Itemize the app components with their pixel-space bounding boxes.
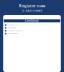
staticText: Register now	[19, 3, 45, 8]
button[interactable]: Continue	[4, 19, 60, 22]
staticText: Free transfers	[7, 33, 18, 34]
staticText: Cashback rewards	[7, 30, 22, 32]
staticText: to claim a reward	[21, 9, 42, 12]
staticText: Continue	[25, 19, 39, 22]
staticText: No annual fee	[7, 27, 16, 29]
staticText: Fast approval	[7, 24, 17, 26]
